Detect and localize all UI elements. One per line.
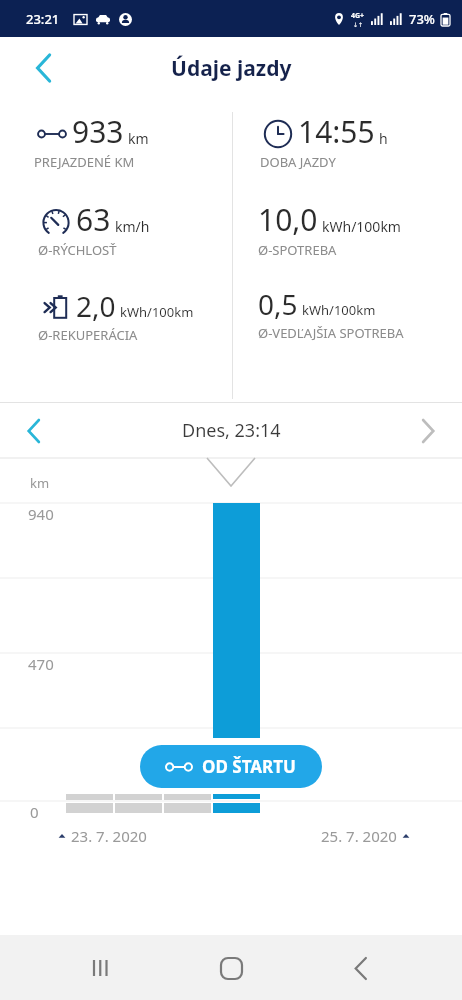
button[interactable]: Späť bbox=[20, 44, 68, 92]
staticText: 933 bbox=[72, 111, 124, 152]
staticText: 4G+ bbox=[351, 11, 365, 21]
button[interactable]: Domov bbox=[203, 940, 259, 996]
staticText: Dnes, 23:14 bbox=[182, 418, 281, 443]
staticText: OD ŠTARTU bbox=[202, 755, 296, 778]
button[interactable]: Nasledujúci deň bbox=[404, 407, 452, 455]
staticText: 63 bbox=[76, 199, 111, 240]
staticText: Ø-REKUPERÁCIA bbox=[38, 326, 138, 344]
staticText: h bbox=[379, 129, 388, 148]
staticText: 23:21 bbox=[26, 10, 60, 28]
staticText: PREJAZDENÉ KM bbox=[34, 153, 135, 171]
button[interactable]: Predchádzajúci deň bbox=[10, 407, 58, 455]
button[interactable]: Nedávne bbox=[74, 940, 130, 996]
staticText: km bbox=[30, 474, 50, 492]
staticText: km bbox=[128, 129, 149, 148]
staticText: kWh/100km bbox=[322, 217, 401, 236]
staticText: Ø-VEDĽAJŠIA SPOTREBA bbox=[258, 324, 404, 342]
staticText: 73% bbox=[409, 10, 435, 28]
staticText: 10,0 bbox=[258, 199, 318, 240]
staticText: 940 bbox=[28, 504, 54, 524]
staticText: kWh/100km bbox=[120, 303, 194, 321]
button[interactable]: Späť bbox=[333, 940, 389, 996]
staticText: 0,5 bbox=[258, 285, 298, 323]
staticText: km/h bbox=[115, 217, 150, 236]
staticText: 23. 7. 2020 bbox=[71, 826, 147, 846]
button[interactable]: OD ŠTARTU bbox=[140, 745, 322, 788]
staticText: 2,0 bbox=[76, 287, 116, 325]
staticText: 470 bbox=[28, 654, 54, 674]
staticText: 0 bbox=[30, 802, 39, 822]
staticText: Ø-RÝCHLOSŤ bbox=[38, 241, 117, 259]
staticText: 25. 7. 2020 bbox=[321, 826, 397, 846]
staticText: Údaje jazdy bbox=[171, 54, 292, 83]
staticText: DOBA JAZDY bbox=[260, 153, 336, 171]
staticText: kWh/100km bbox=[302, 301, 376, 319]
staticText: ↓↑ bbox=[353, 21, 364, 28]
staticText: 14:55 bbox=[298, 111, 375, 152]
staticText: Ø-SPOTREBA bbox=[258, 241, 337, 259]
